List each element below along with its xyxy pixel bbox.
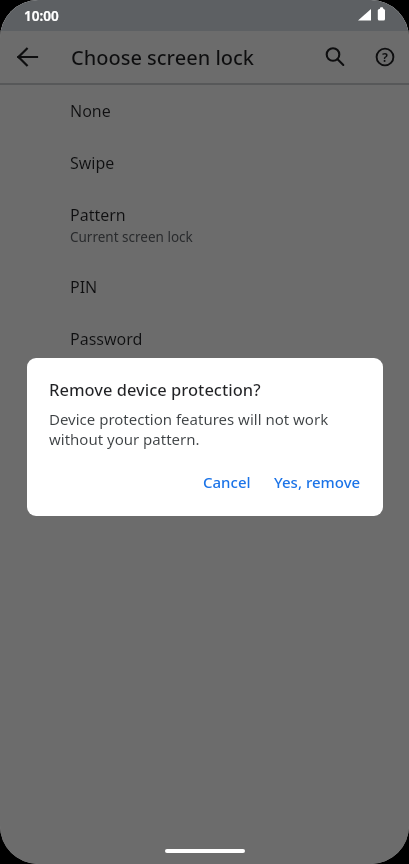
button[interactable]: None (0, 85, 409, 137)
staticText: Swipe (70, 152, 115, 174)
button[interactable]: Password (0, 313, 409, 365)
button[interactable]: Pattern (0, 189, 409, 261)
staticText: Pattern (70, 204, 126, 226)
staticText: Password (70, 328, 143, 350)
button[interactable]: PIN (0, 261, 409, 313)
button[interactable]: Cancel (197, 466, 257, 498)
staticText: None (70, 100, 111, 122)
staticText: Choose screen lock (71, 44, 254, 71)
staticText: 10:00 (24, 7, 59, 25)
staticText: Remove device protection? (49, 378, 261, 400)
staticText: Device protection features will not work… (49, 409, 329, 449)
staticText: PIN (70, 276, 98, 298)
button[interactable] (315, 37, 355, 77)
button[interactable]: Yes, remove (268, 466, 367, 498)
button[interactable]: ? (365, 37, 405, 77)
staticText: Cancel (203, 472, 251, 492)
staticText: Current screen lock (70, 228, 193, 246)
button[interactable]: Swipe (0, 137, 409, 189)
staticText: ? (382, 49, 388, 66)
staticText: Yes, remove (274, 472, 361, 492)
button[interactable] (8, 37, 48, 77)
